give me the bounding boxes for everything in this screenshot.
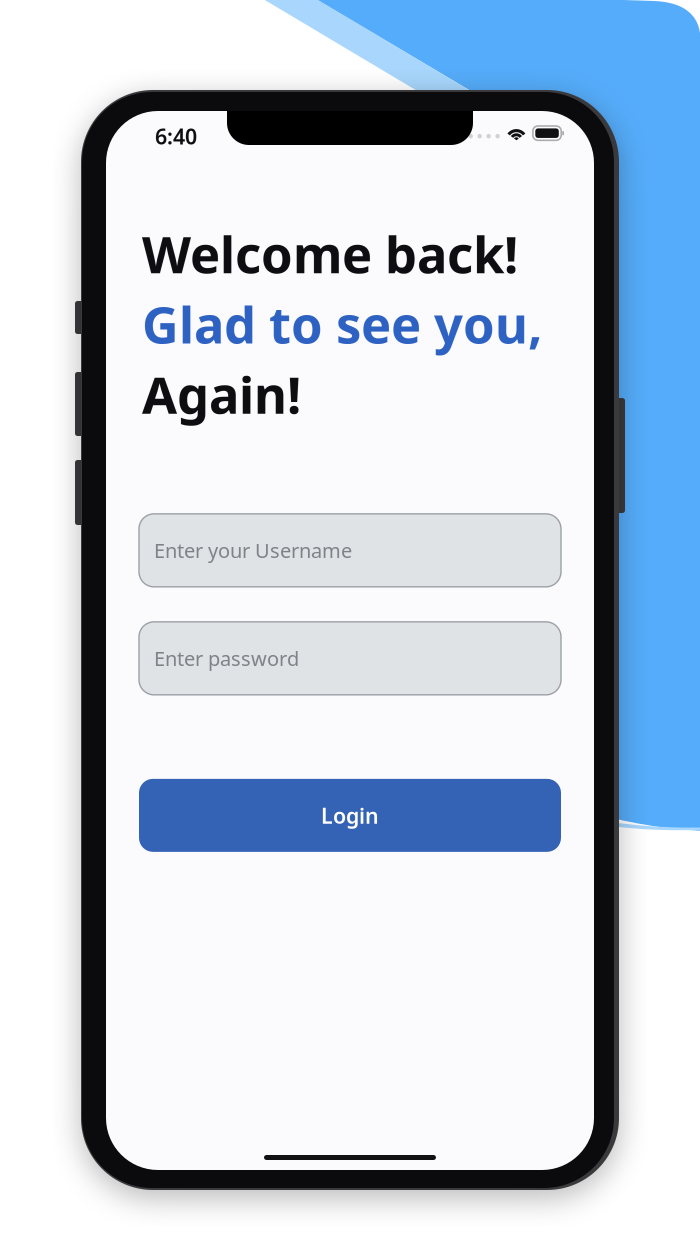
staticText: Welcome back!	[142, 220, 518, 287]
staticText: Enter your Username	[154, 537, 352, 564]
staticText: Login	[321, 801, 379, 829]
staticText: Glad to see you,	[142, 290, 542, 358]
staticText: Enter password	[154, 645, 299, 672]
button[interactable]: Enter your Username	[139, 514, 561, 587]
staticText: 6:40	[155, 122, 197, 150]
button[interactable]: Enter password	[139, 622, 561, 695]
button[interactable]: Login	[139, 779, 561, 852]
staticText: Again!	[142, 361, 301, 428]
